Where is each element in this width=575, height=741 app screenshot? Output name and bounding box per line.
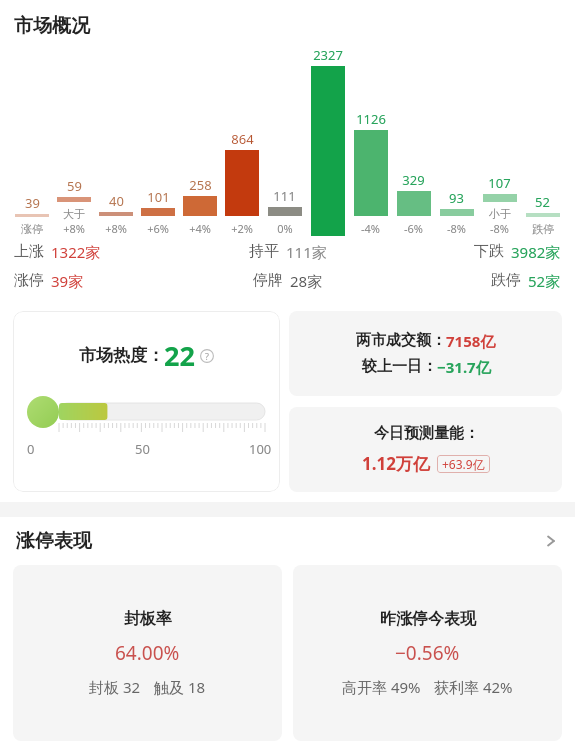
staticText: ? <box>205 350 209 362</box>
staticText: 上涨 <box>14 242 44 261</box>
staticText: 28家 <box>290 271 323 291</box>
button[interactable]: 涨停表现 <box>0 517 575 565</box>
staticText: 1.12万亿 <box>362 452 430 475</box>
staticText: 329 <box>402 171 425 189</box>
staticText: +63.9亿 <box>442 456 485 472</box>
staticText: 107 <box>488 174 511 192</box>
staticText: 高开率 49% <box>342 677 421 697</box>
staticText: 3982家 <box>511 242 561 262</box>
staticText: 39家 <box>51 271 84 291</box>
staticText: 111家 <box>286 242 327 262</box>
staticText: 昨涨停今表现 <box>380 609 476 629</box>
button[interactable]: 昨涨停今表现 <box>293 565 562 741</box>
staticText: +6% <box>147 221 169 236</box>
staticText: 今日预测量能： <box>374 424 479 443</box>
staticText: 封板 32 <box>89 677 141 697</box>
staticText: 0% <box>277 221 293 236</box>
staticText: 市场概况 <box>14 14 90 38</box>
staticText: 1126 <box>356 110 386 128</box>
staticText: 小于 <box>489 207 511 221</box>
button[interactable]: 帮助 <box>200 349 214 363</box>
staticText: 涨停 <box>21 222 43 236</box>
button[interactable]: 市场热度： <box>13 311 280 492</box>
staticText: 跌停 <box>491 271 521 290</box>
staticText: 涨停 <box>14 271 44 290</box>
staticText: 64.00% <box>115 640 180 666</box>
staticText: 触及 18 <box>154 677 206 697</box>
staticText: 52家 <box>528 271 561 291</box>
staticText: 39 <box>25 194 40 212</box>
staticText: 101 <box>147 188 170 206</box>
staticText: 864 <box>231 130 254 148</box>
staticText: 22 <box>164 337 195 374</box>
staticText: 111 <box>273 187 296 205</box>
staticText: 较上一日： <box>362 357 437 376</box>
staticText: 100 <box>249 440 272 458</box>
staticText: +8% <box>63 221 85 236</box>
staticText: 52 <box>535 193 550 211</box>
staticText: -8% <box>490 221 509 236</box>
button[interactable]: 封板率 <box>13 565 282 741</box>
other: 查看更多 <box>543 533 559 549</box>
staticText: +2% <box>231 221 253 236</box>
staticText: 50 <box>135 440 150 458</box>
staticText: 大于 <box>63 207 85 221</box>
staticText: 涨停表现 <box>16 529 92 553</box>
staticText: 40 <box>109 192 124 210</box>
staticText: +4% <box>189 221 211 236</box>
staticText: 停牌 <box>253 271 283 290</box>
staticText: +8% <box>105 221 127 236</box>
button[interactable]: 两市成交额： <box>289 311 562 396</box>
staticText: 0 <box>27 440 35 458</box>
staticText: 获利率 42% <box>434 677 513 697</box>
staticText: 93 <box>449 189 464 207</box>
staticText: 1322家 <box>51 242 101 262</box>
staticText: 7158亿 <box>446 331 496 351</box>
staticText: 258 <box>189 176 212 194</box>
staticText: -4% <box>361 221 380 236</box>
staticText: −0.56% <box>395 640 460 666</box>
staticText: 封板率 <box>124 609 172 629</box>
staticText: -8% <box>447 221 466 236</box>
button[interactable]: 今日预测量能： <box>289 407 562 492</box>
staticText: 跌停 <box>532 222 554 236</box>
staticText: −31.7亿 <box>437 357 491 377</box>
staticText: 两市成交额： <box>356 331 446 350</box>
staticText: 市场热度： <box>79 345 164 366</box>
staticText: -6% <box>404 221 423 236</box>
staticText: 2327 <box>313 46 343 64</box>
staticText: 下跌 <box>474 242 504 261</box>
staticText: 59 <box>67 177 82 195</box>
staticText: 持平 <box>249 242 279 261</box>
